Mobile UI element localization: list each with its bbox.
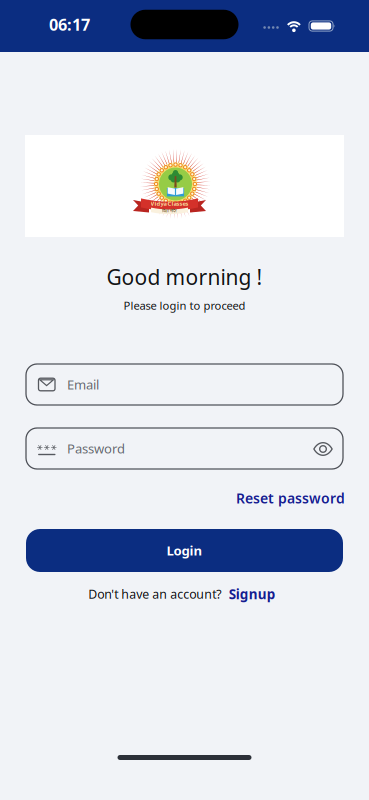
staticText: विद्या मंदिर xyxy=(162,208,177,213)
button[interactable]: Signup xyxy=(229,585,276,603)
button[interactable]: Email xyxy=(26,364,343,405)
staticText: Email xyxy=(67,376,99,393)
staticText: Don't have an account? xyxy=(88,586,221,602)
button[interactable]: Reset password xyxy=(26,487,345,509)
staticText: Vidya Classes xyxy=(150,200,188,207)
staticText: Good morning ! xyxy=(106,263,262,291)
staticText: Reset password xyxy=(236,489,345,507)
staticText: Please login to proceed xyxy=(123,298,245,313)
button[interactable]: Password xyxy=(26,428,343,469)
staticText: Signup xyxy=(229,585,276,603)
staticText: 06:17 xyxy=(49,14,90,35)
button[interactable]: Login xyxy=(26,529,343,572)
staticText: Login xyxy=(166,542,202,559)
staticText: Password xyxy=(67,440,125,457)
